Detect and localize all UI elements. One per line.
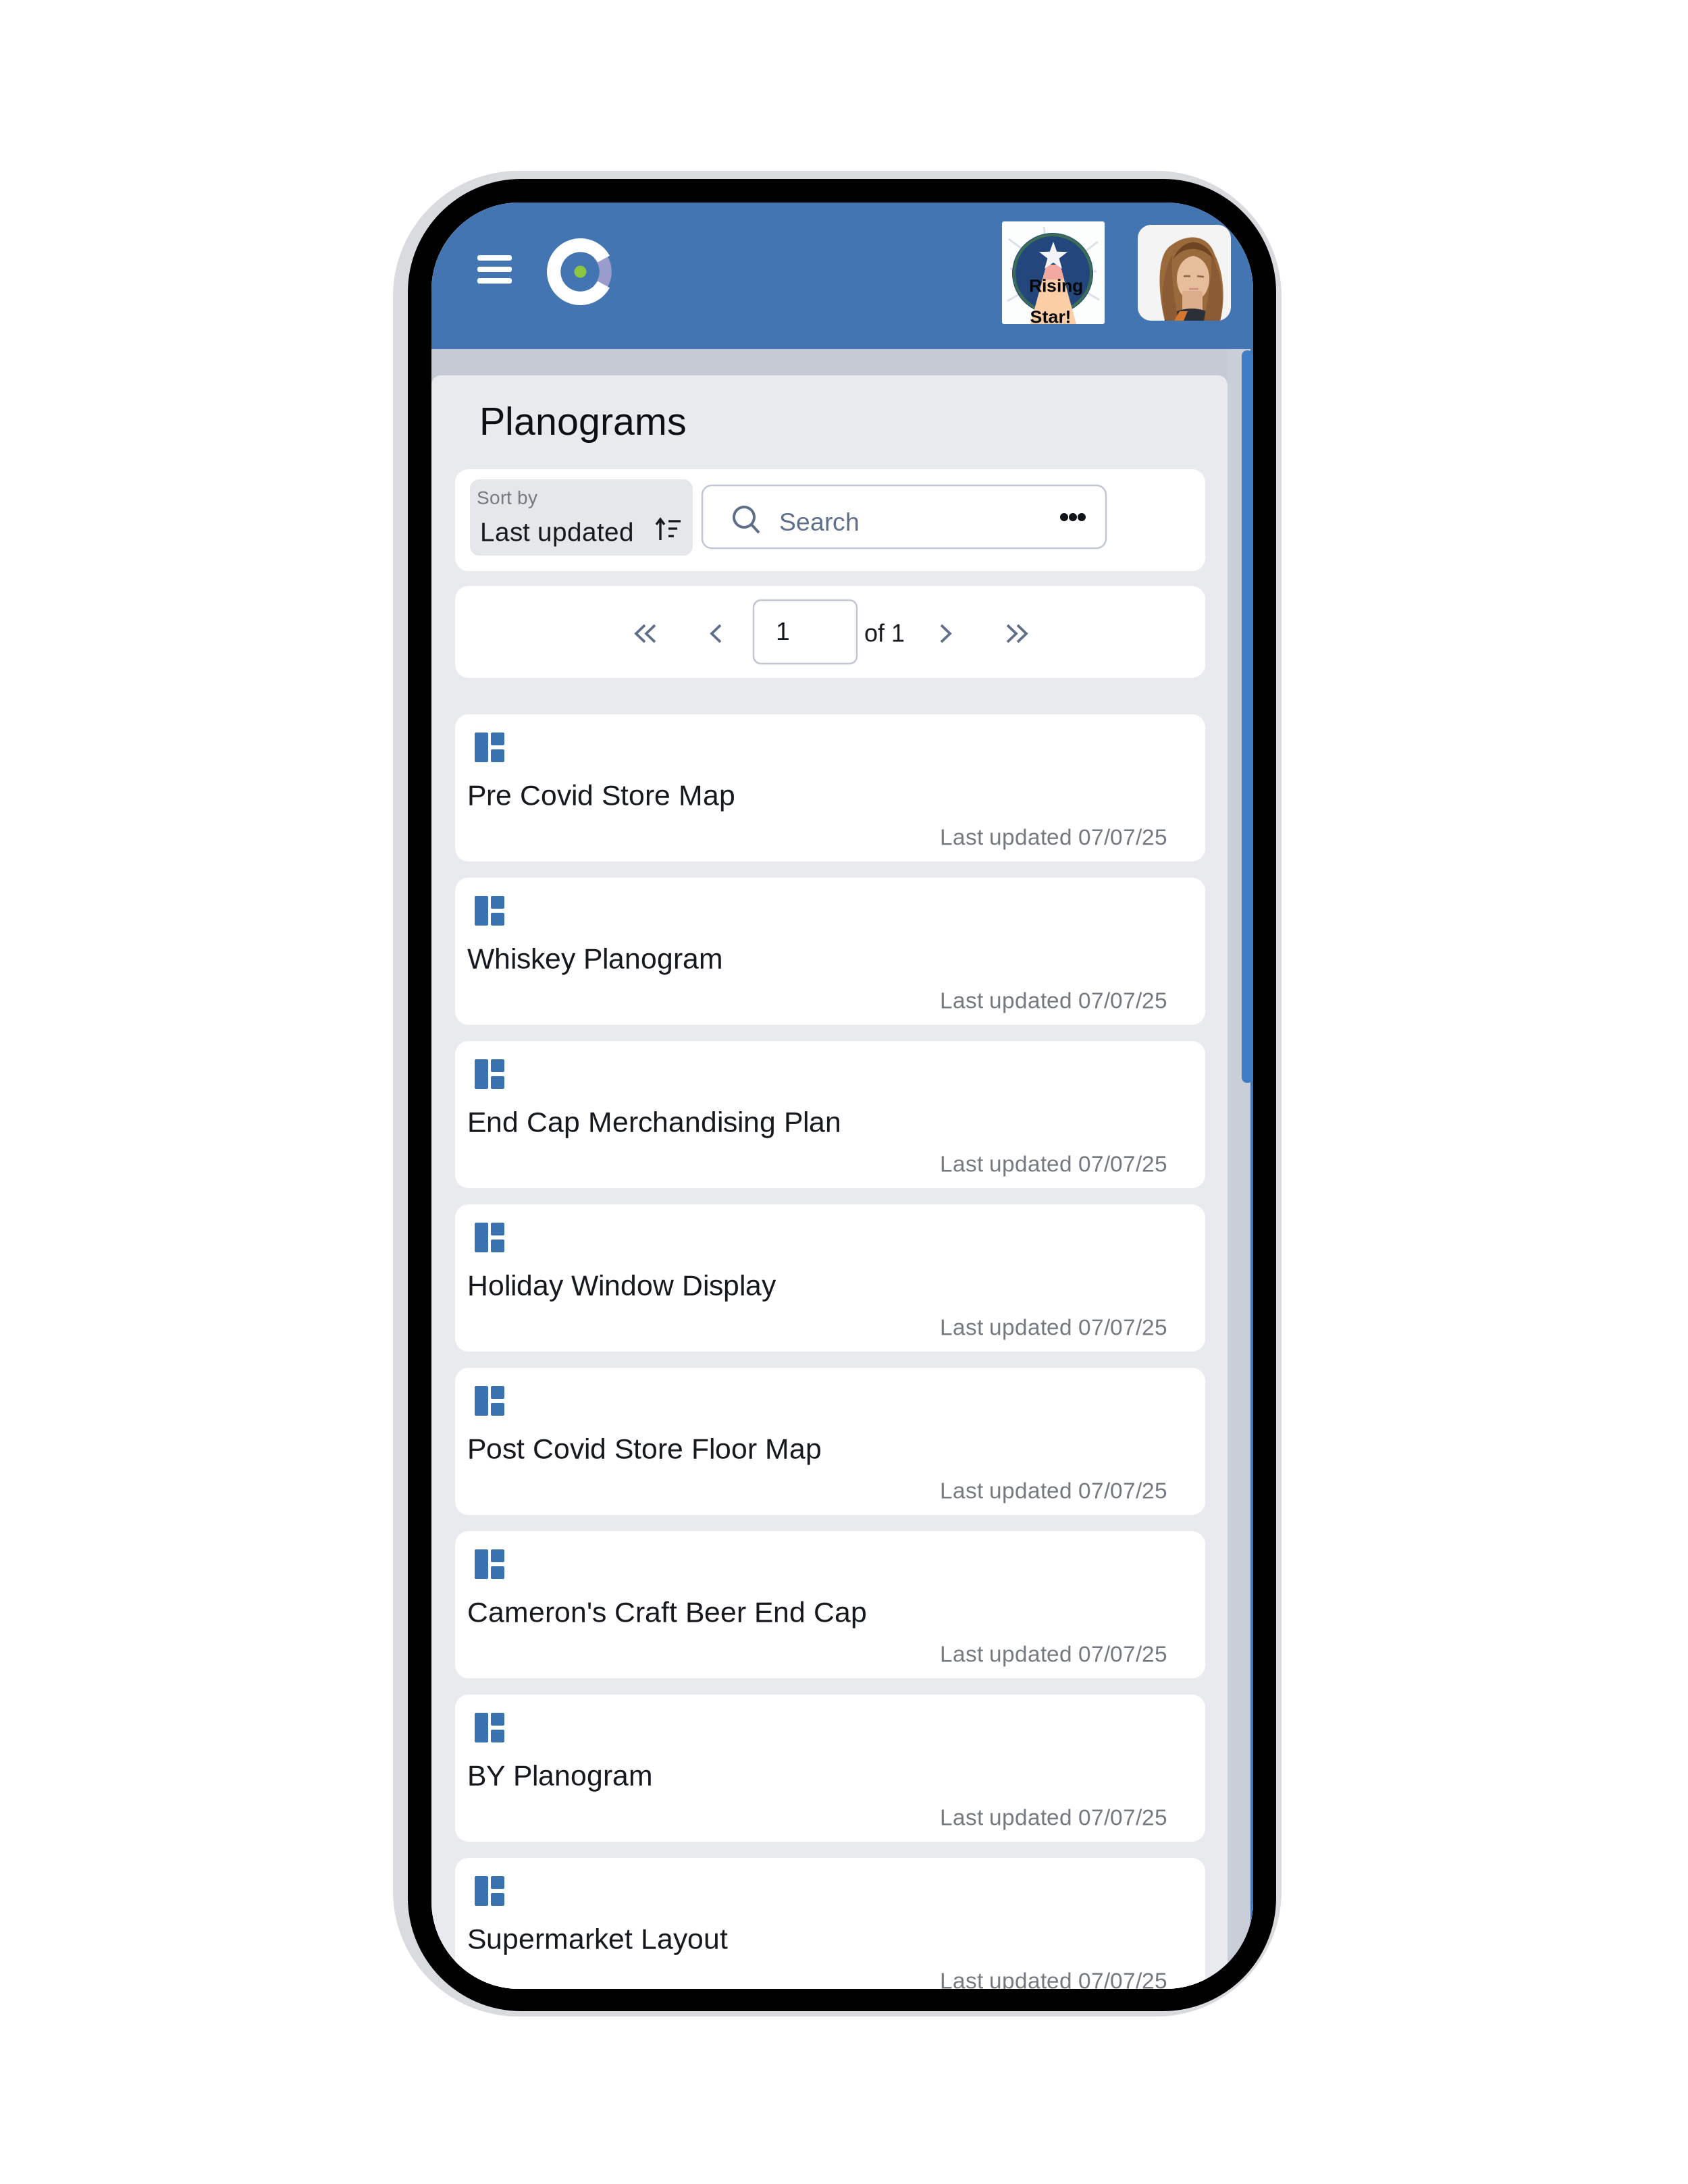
- staticText: Search: [779, 508, 860, 536]
- button[interactable]: First page: [635, 624, 656, 643]
- button[interactable]: Post Covid Store Floor Map: [455, 1368, 1205, 1515]
- staticText: Last updated 07/07/25: [940, 1478, 1167, 1503]
- button[interactable]: Whiskey Planogram: [455, 878, 1205, 1025]
- staticText: Last updated 07/07/25: [940, 1151, 1167, 1176]
- staticText: Last updated: [480, 517, 634, 547]
- button[interactable]: BY Planogram: [455, 1695, 1205, 1842]
- staticText: Sort by: [477, 487, 537, 508]
- button[interactable]: Supermarket Layout: [455, 1858, 1205, 2005]
- staticText: Last updated 07/07/25: [940, 1805, 1167, 1830]
- staticText: Star!: [1030, 307, 1071, 327]
- staticText: Last updated 07/07/25: [940, 1968, 1167, 1993]
- button[interactable]: Profile: [1138, 225, 1231, 321]
- button[interactable]: Last page: [1006, 624, 1028, 643]
- button[interactable]: Sort by: [470, 479, 693, 556]
- button[interactable]: End Cap Merchandising Plan: [455, 1041, 1205, 1188]
- button[interactable]: Rising Star badge: [1002, 221, 1105, 324]
- staticText: Pre Covid Store Map: [467, 779, 735, 811]
- button[interactable]: Cameron's Craft Beer End Cap: [455, 1531, 1205, 1678]
- staticText: Planograms: [479, 400, 687, 443]
- staticText: Post Covid Store Floor Map: [467, 1433, 822, 1465]
- staticText: Cameron's Craft Beer End Cap: [467, 1596, 867, 1628]
- button[interactable]: Home: [547, 238, 614, 305]
- staticText: BY Planogram: [467, 1759, 653, 1792]
- staticText: Last updated 07/07/25: [940, 1315, 1167, 1340]
- staticText: Whiskey Planogram: [467, 943, 723, 975]
- button[interactable]: Pre Covid Store Map: [455, 714, 1205, 861]
- staticText: of 1: [864, 620, 905, 647]
- staticText: 1: [776, 617, 790, 645]
- button[interactable]: Previous page: [710, 624, 722, 643]
- button[interactable]: Search: [702, 485, 1106, 548]
- staticText: End Cap Merchandising Plan: [467, 1106, 841, 1138]
- staticText: Rising: [1029, 276, 1083, 296]
- button[interactable]: Next page: [940, 624, 951, 643]
- button[interactable]: Menu: [477, 255, 512, 284]
- staticText: Supermarket Layout: [467, 1923, 728, 1955]
- staticText: Last updated 07/07/25: [940, 1641, 1167, 1667]
- button[interactable]: Holiday Window Display: [455, 1204, 1205, 1352]
- staticText: Last updated 07/07/25: [940, 988, 1167, 1013]
- staticText: Last updated 07/07/25: [940, 825, 1167, 850]
- staticText: Holiday Window Display: [467, 1269, 776, 1302]
